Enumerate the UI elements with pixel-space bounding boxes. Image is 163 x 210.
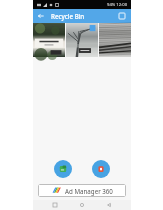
staticText: Ad Manager 360 xyxy=(65,187,113,195)
button[interactable]: Ad Manager 360 xyxy=(38,184,126,197)
staticText: 94% 12:00 xyxy=(107,2,128,8)
button[interactable]: Back xyxy=(36,11,46,21)
button[interactable]: Select all xyxy=(117,11,127,21)
button[interactable]: Home xyxy=(77,200,87,210)
button[interactable]: Restore xyxy=(54,160,72,178)
button[interactable]: Photo 1 xyxy=(33,23,65,57)
staticText: Recycle Bin xyxy=(51,12,85,20)
button[interactable]: Back xyxy=(104,200,114,210)
button[interactable]: Recent apps xyxy=(50,200,60,210)
button[interactable]: Delete xyxy=(92,160,110,178)
button[interactable]: Photo 2 xyxy=(66,23,98,57)
button[interactable]: Photo 3 xyxy=(99,23,131,57)
